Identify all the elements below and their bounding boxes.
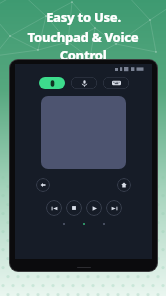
button[interactable]: Next track xyxy=(106,200,122,216)
staticText: Touchpad & Voice Control xyxy=(5,28,161,64)
button[interactable]: Stop xyxy=(66,200,82,216)
button[interactable]: Voice input xyxy=(71,77,97,89)
button[interactable]: Touchpad mode xyxy=(39,77,65,89)
button[interactable]: Keyboard xyxy=(103,77,129,89)
staticText: Easy to Use. xyxy=(46,8,121,26)
button[interactable]: Previous track xyxy=(46,200,62,216)
button[interactable]: Home xyxy=(117,178,131,192)
button[interactable]: Play xyxy=(86,200,102,216)
button[interactable]: Touchpad surface xyxy=(41,96,126,169)
button[interactable]: Back xyxy=(36,178,50,192)
